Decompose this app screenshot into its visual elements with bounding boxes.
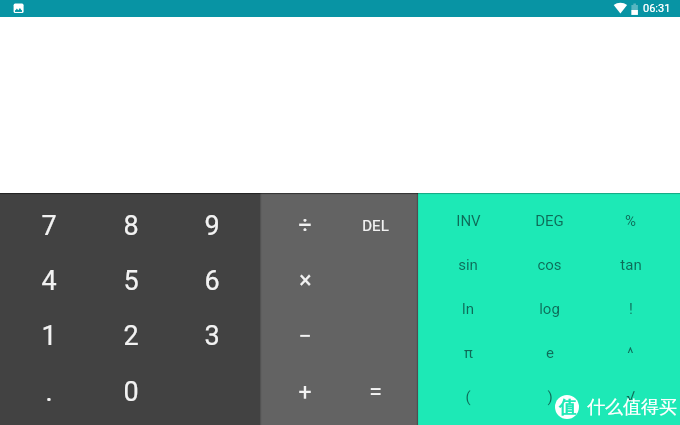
button[interactable]: ln (427, 287, 509, 331)
staticText: 值 (559, 397, 576, 418)
button[interactable]: 2 (90, 308, 171, 364)
button[interactable]: DEG (509, 198, 590, 243)
other: Wi-Fi signal and battery (614, 3, 628, 15)
staticText: 5 (123, 265, 139, 297)
staticText: 7 (41, 210, 57, 242)
staticText: = (369, 379, 382, 406)
staticText: 什么值得买 (587, 396, 677, 419)
staticText: . (45, 376, 53, 408)
staticText: 8 (123, 210, 139, 242)
staticText: ( (465, 388, 471, 406)
button[interactable]: 3 (171, 308, 252, 364)
staticText: 06:31 (643, 2, 671, 15)
button[interactable]: π (427, 331, 509, 375)
button[interactable]: . (8, 364, 90, 420)
staticText: cos (537, 256, 562, 274)
staticText: 9 (204, 210, 220, 242)
staticText: − (298, 323, 312, 350)
staticText: ^ (627, 344, 634, 362)
staticText: ÷ (298, 212, 312, 239)
button[interactable]: 6 (171, 253, 252, 308)
staticText: × (299, 267, 312, 294)
staticText: + (298, 379, 312, 406)
button[interactable]: ) (509, 375, 590, 419)
button[interactable]: 9 (171, 198, 252, 253)
button[interactable]: DEL (340, 198, 410, 253)
staticText: DEG (535, 212, 564, 230)
staticText: 3 (204, 320, 220, 352)
button[interactable]: 5 (90, 253, 171, 308)
button[interactable]: % (590, 198, 671, 243)
button[interactable]: 8 (90, 198, 171, 253)
staticText: 2 (123, 320, 139, 352)
button[interactable]: √ (590, 375, 671, 419)
button[interactable]: INV (427, 198, 509, 243)
button[interactable]: ( (427, 375, 509, 419)
button[interactable]: 0 (90, 364, 171, 420)
staticText: 4 (41, 265, 57, 297)
button[interactable]: 4 (8, 253, 90, 308)
staticText: ) (547, 388, 553, 406)
button[interactable]: ÷ (270, 198, 340, 253)
staticText: log (539, 300, 560, 318)
button[interactable]: × (270, 253, 340, 308)
staticText: INV (456, 212, 481, 230)
button[interactable]: tan (590, 243, 671, 287)
button[interactable]: ^ (590, 331, 671, 375)
button[interactable]: 1 (8, 308, 90, 364)
button[interactable]: = (340, 364, 410, 420)
button[interactable]: 7 (8, 198, 90, 253)
staticText: 0 (123, 376, 139, 408)
button[interactable]: e (509, 331, 590, 375)
staticText: sin (458, 256, 478, 274)
staticText: π (464, 344, 473, 362)
staticText: DEL (362, 217, 389, 235)
staticText: % (625, 212, 636, 230)
button[interactable]: sin (427, 243, 509, 287)
staticText: e (546, 344, 554, 362)
button[interactable]: log (509, 287, 590, 331)
staticText: ln (462, 300, 474, 318)
staticText: ! (629, 300, 633, 318)
staticText: √ (626, 388, 635, 406)
button[interactable]: cos (509, 243, 590, 287)
staticText: 6 (204, 265, 220, 297)
button[interactable]: ! (590, 287, 671, 331)
staticText: 1 (41, 320, 57, 352)
other: Battery low (631, 3, 638, 15)
button[interactable]: − (270, 308, 340, 364)
staticText: tan (620, 256, 642, 274)
other: Screenshot captured (13, 3, 24, 14)
button[interactable]: + (270, 364, 340, 420)
